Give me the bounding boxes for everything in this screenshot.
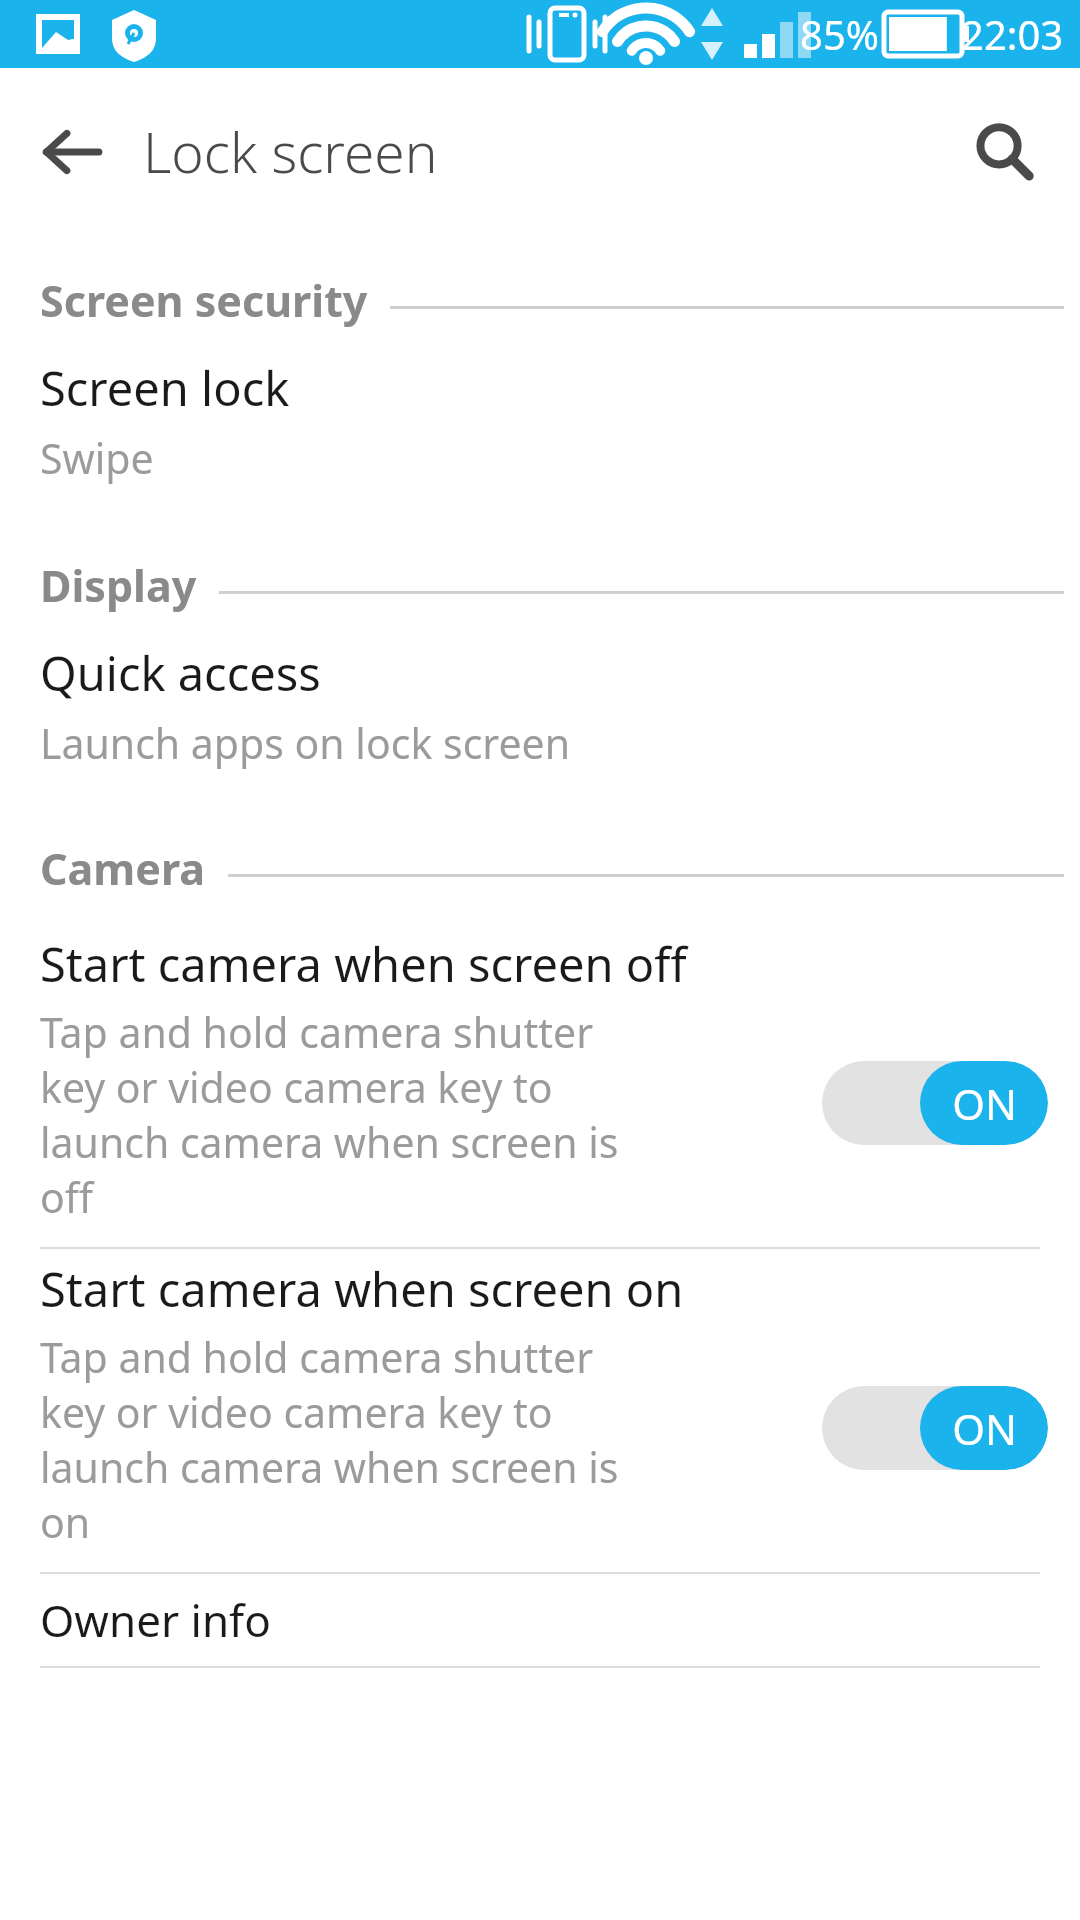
button[interactable]: Toggle on [822,1386,1048,1470]
button[interactable]: Start camera when screen off [0,924,1080,1247]
staticText: Start camera when screen on [40,1257,684,1321]
staticText: Owner info [40,1590,271,1650]
button[interactable]: Back [22,102,122,202]
staticText: Launch apps on lock screen [40,715,571,771]
button[interactable]: Toggle on [822,1061,1048,1145]
staticText: Tap and hold camera shutter key or video… [40,1004,660,1225]
staticText: Start camera when screen off [40,932,687,996]
staticText: Display [40,556,197,615]
button[interactable]: Search [952,100,1056,204]
button[interactable]: Start camera when screen on [0,1249,1080,1572]
staticText: Quick access [40,641,321,705]
staticText: 22:03 [961,7,1064,61]
staticText: ON [952,1400,1017,1457]
button[interactable]: Owner info [0,1574,1080,1666]
staticText: Screen security [40,271,368,330]
staticText: Swipe [40,430,154,486]
button[interactable]: Quick access [0,641,1080,781]
staticText: Tap and hold camera shutter key or video… [40,1329,660,1550]
staticText: Lock screen [143,114,438,189]
staticText: Screen lock [40,356,290,420]
staticText: Camera [40,839,206,898]
staticText: 85% [800,7,879,61]
button[interactable]: Screen lock [0,356,1080,496]
staticText: ON [952,1075,1017,1132]
